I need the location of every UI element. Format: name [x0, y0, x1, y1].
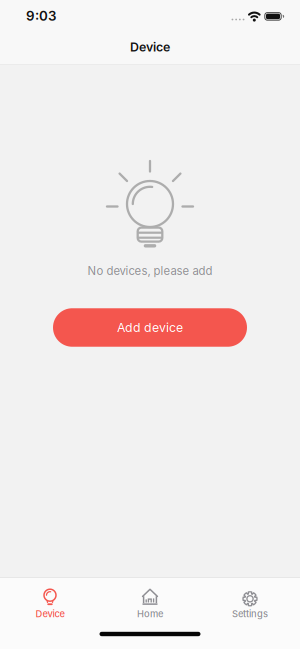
staticText: Add device [117, 320, 183, 335]
staticText: No devices, please add [87, 264, 212, 278]
staticText: Device [35, 608, 64, 620]
staticText: 9:03 [26, 8, 56, 24]
staticText: Settings [232, 608, 268, 620]
button[interactable]: Device [0, 578, 100, 626]
button[interactable]: Home [100, 578, 200, 626]
button[interactable]: Settings [200, 578, 300, 626]
staticText: Home [137, 608, 163, 620]
staticText: Device [130, 40, 170, 55]
button[interactable]: Add device [53, 308, 247, 347]
